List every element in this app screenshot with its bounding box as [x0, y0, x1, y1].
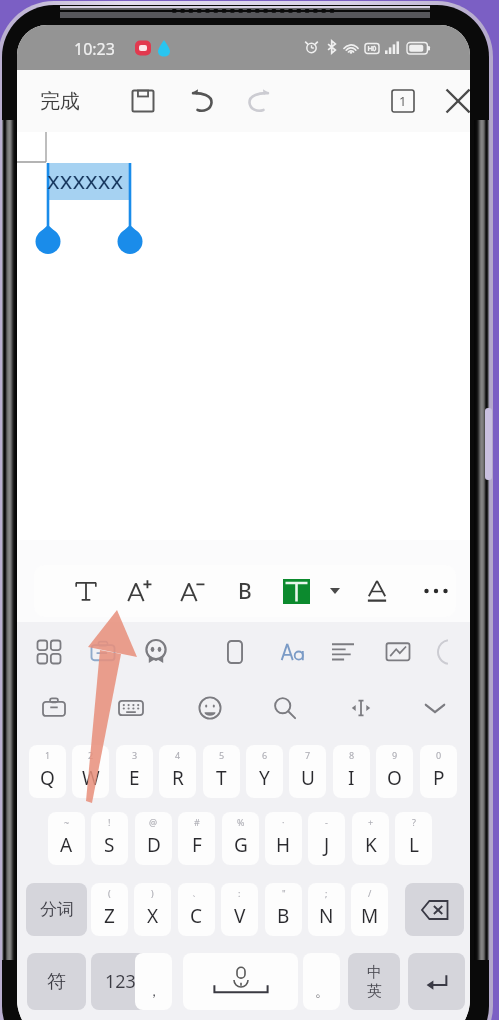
staticText: (: [108, 887, 111, 899]
button[interactable]: 。: [303, 953, 340, 1010]
button[interactable]: Keyboard: [110, 687, 152, 729]
button[interactable]: 4: [159, 745, 196, 798]
button[interactable]: 0: [420, 745, 457, 798]
button[interactable]: 3: [116, 745, 153, 798]
button[interactable]: 2: [72, 745, 109, 798]
staticText: B: [277, 903, 290, 929]
button[interactable]: Cursor: [340, 687, 382, 729]
staticText: J: [324, 832, 330, 858]
button[interactable]: Choose colour: [317, 565, 353, 617]
button[interactable]: 中: [348, 953, 400, 1010]
button[interactable]: !: [91, 812, 128, 865]
staticText: xxxxxx: [47, 163, 124, 196]
staticText: E: [129, 765, 140, 791]
button[interactable]: Backspace: [405, 883, 464, 936]
staticText: G: [234, 832, 248, 858]
button[interactable]: Page count: [382, 80, 424, 122]
button[interactable]: Font colour: [351, 565, 403, 617]
staticText: !: [108, 816, 111, 828]
button[interactable]: ，: [135, 953, 172, 1010]
staticText: M: [361, 903, 379, 929]
staticText: 分词: [40, 899, 74, 920]
button[interactable]: More: [429, 631, 470, 673]
button[interactable]: :: [221, 883, 258, 936]
staticText: 10:23: [74, 38, 115, 60]
button[interactable]: 符: [27, 953, 86, 1010]
button[interactable]: ): [134, 883, 171, 936]
button[interactable]: Text style: [60, 565, 112, 617]
button[interactable]: 完成: [30, 80, 90, 122]
staticText: U: [301, 765, 315, 791]
button[interactable]: 分词: [26, 883, 87, 936]
button[interactable]: 7: [289, 745, 326, 798]
staticText: Y: [259, 765, 270, 791]
button[interactable]: 123: [91, 953, 150, 1010]
button[interactable]: Enter: [408, 953, 465, 1010]
button[interactable]: Undo: [181, 80, 223, 122]
button[interactable]: ~: [48, 812, 85, 865]
staticText: 7: [305, 749, 311, 761]
button[interactable]: Emoji: [135, 631, 177, 673]
button[interactable]: Clipboard: [82, 631, 124, 673]
button[interactable]: Apps: [28, 631, 70, 673]
staticText: 、: [192, 887, 201, 898]
button[interactable]: (: [91, 883, 128, 936]
button[interactable]: Increase font size: [114, 565, 166, 617]
button[interactable]: 1: [29, 745, 66, 798]
button[interactable]: +: [352, 812, 389, 865]
button[interactable]: ": [265, 883, 302, 936]
button[interactable]: 6: [246, 745, 283, 798]
staticText: D: [147, 832, 161, 858]
button[interactable]: ·: [265, 812, 302, 865]
button[interactable]: B: [219, 565, 271, 617]
button[interactable]: Font: [272, 631, 314, 673]
button[interactable]: /: [351, 883, 388, 936]
staticText: 5: [219, 749, 225, 761]
staticText: 完成: [40, 89, 80, 114]
button[interactable]: Redo: [238, 80, 280, 122]
staticText: 8: [349, 749, 355, 761]
staticText: 9: [392, 749, 398, 761]
button[interactable]: 9: [376, 745, 413, 798]
staticText: L: [409, 832, 419, 858]
button[interactable]: Toolbox: [33, 687, 75, 729]
button[interactable]: #: [178, 812, 215, 865]
button[interactable]: Close: [437, 80, 470, 122]
staticText: X: [147, 903, 159, 929]
button[interactable]: Smiley: [189, 687, 231, 729]
staticText: 2: [88, 749, 94, 761]
button[interactable]: Highlight colour: [270, 565, 322, 617]
button[interactable]: ?: [395, 812, 432, 865]
staticText: 0: [436, 749, 442, 761]
button[interactable]: Space: [183, 953, 298, 1010]
button[interactable]: @: [135, 812, 172, 865]
staticText: ": [282, 887, 286, 899]
staticText: 。: [315, 983, 329, 1001]
staticText: I: [348, 765, 355, 791]
staticText: K: [365, 832, 377, 858]
button[interactable]: 8: [333, 745, 370, 798]
button[interactable]: More: [410, 565, 462, 617]
button[interactable]: Decrease font size: [167, 565, 219, 617]
button[interactable]: Align: [322, 631, 364, 673]
button[interactable]: Image: [377, 631, 419, 673]
button[interactable]: ;: [308, 883, 345, 936]
staticText: N: [319, 903, 334, 929]
staticText: 3: [132, 749, 138, 761]
button[interactable]: 5: [203, 745, 240, 798]
button[interactable]: Save: [122, 80, 164, 122]
staticText: 123: [105, 969, 136, 994]
button[interactable]: %: [222, 812, 259, 865]
staticText: B: [238, 577, 252, 606]
button[interactable]: Search: [264, 687, 306, 729]
staticText: S: [104, 832, 115, 858]
button[interactable]: 、: [178, 883, 215, 936]
staticText: 1: [45, 749, 51, 761]
button[interactable]: Collapse: [414, 687, 456, 729]
button[interactable]: Frame: [214, 631, 256, 673]
staticText: 4: [175, 749, 181, 761]
staticText: 英: [367, 982, 382, 1001]
button[interactable]: -: [308, 812, 345, 865]
staticText: H: [276, 832, 291, 858]
staticText: 中: [367, 963, 382, 982]
